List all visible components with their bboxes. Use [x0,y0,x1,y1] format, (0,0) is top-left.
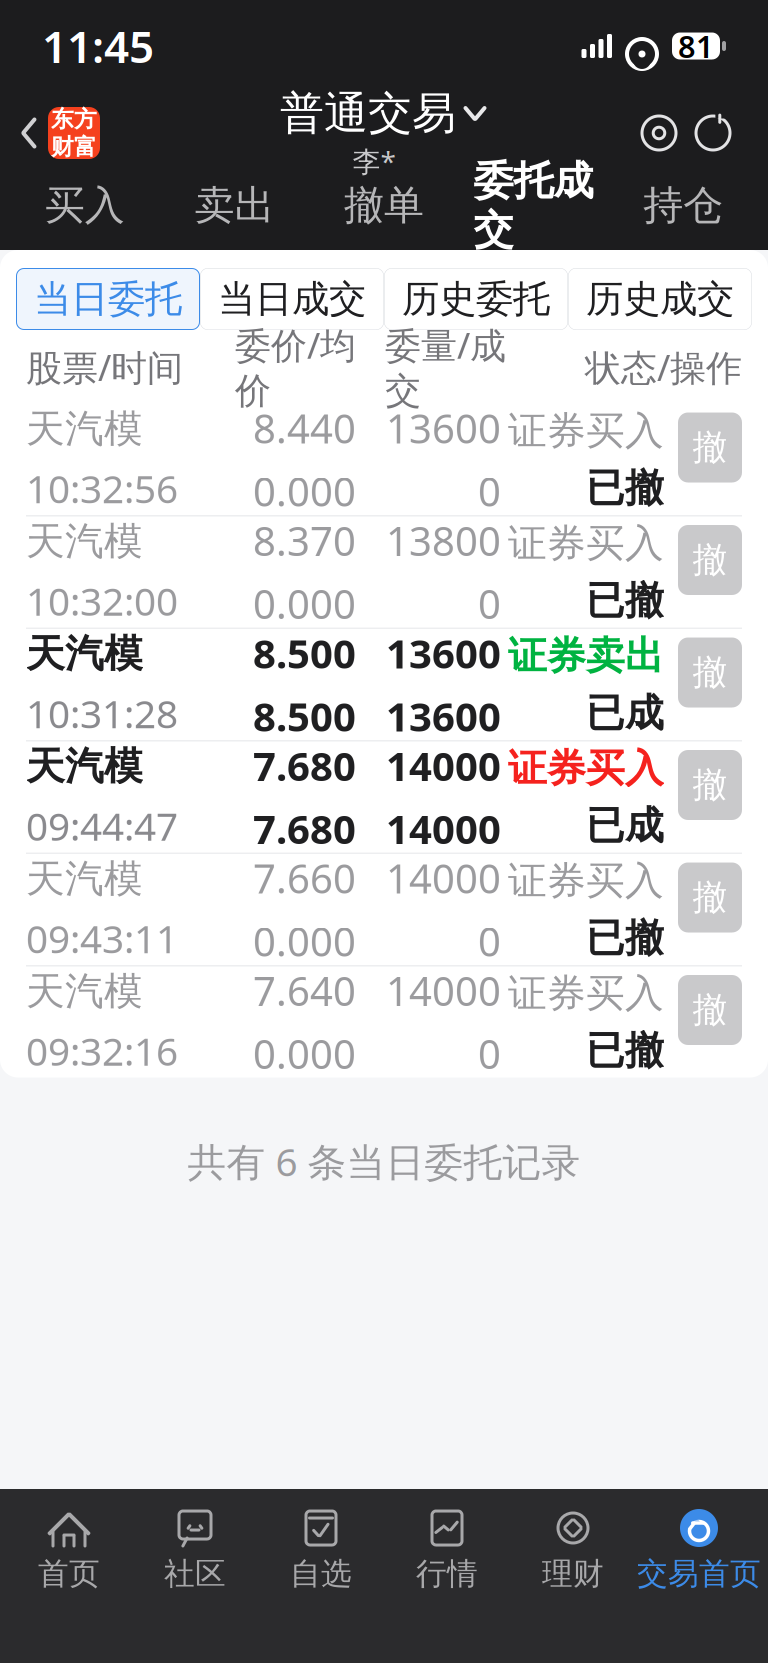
button[interactable]: 撤 [678,525,742,595]
staticText: 历史成交 [586,276,734,322]
staticText: 财富 [51,133,97,161]
staticText: 0.000 [253,577,356,630]
staticText: 天汽模 [26,518,143,565]
button[interactable]: Settings [632,106,686,160]
staticText: 社区 [164,1555,226,1593]
button[interactable]: 历史成交 [568,268,752,330]
staticText: 13800 [386,514,501,567]
button[interactable]: 普通交易 [280,86,488,180]
button[interactable]: 买入 [10,175,160,249]
staticText: 撤 [692,539,727,581]
staticText: 普通交易 [280,86,456,140]
staticText: 撤 [692,651,727,694]
staticText: 撤 [692,764,727,806]
staticText: 李* [352,142,395,180]
button[interactable]: 撤单 [309,175,459,249]
staticText: 买入 [45,181,125,230]
staticText: 13600 [386,689,501,743]
staticText: 14000 [386,851,501,904]
staticText: 09:43:11 [26,913,178,964]
staticText: 当日委托 [34,276,182,322]
staticText: 0 [478,464,501,518]
staticText: 7.660 [253,851,356,904]
staticText: 行情 [416,1555,478,1593]
staticText: 当日成交 [218,276,366,322]
button[interactable]: 撤 [678,412,742,482]
staticText: 已撤 [586,577,664,624]
button[interactable]: 持仓 [608,175,758,249]
button[interactable]: 卖出 [160,175,309,249]
staticText: 证券卖出 [508,632,664,679]
staticText: 10:31:28 [26,688,178,739]
staticText: 东方 [51,105,97,133]
button[interactable]: 当日委托 [16,268,200,330]
staticText: 自选 [290,1555,352,1593]
button[interactable]: Refresh [686,106,740,160]
staticText: 09:32:16 [26,1025,178,1076]
staticText: 8.500 [253,626,356,679]
staticText: 天汽模 [26,855,143,903]
staticText: 11:45 [42,17,154,75]
staticText: 已撤 [586,914,664,962]
staticText: 7.680 [253,739,356,792]
staticText: 持仓 [643,181,723,230]
button[interactable]: Back [0,107,100,159]
staticText: 委托成交 [474,156,594,255]
staticText: 撤 [692,876,727,919]
staticText: 10:32:56 [26,463,178,514]
staticText: 7.640 [253,964,356,1017]
staticText: 撤 [692,989,727,1031]
staticText: 8.500 [253,689,356,743]
staticText: 撤单 [344,181,424,230]
staticText: 证券买入 [508,857,664,904]
staticText: 天汽模 [26,630,143,678]
staticText: 共有 6 条当日委托记录 [187,1135,580,1187]
staticText: 撤 [692,426,727,469]
button[interactable]: 撤 [678,862,742,932]
staticText: 已撤 [586,1027,664,1074]
staticText: 0 [478,914,501,968]
staticText: 股票/时间 [26,343,183,391]
staticText: 14000 [386,802,501,855]
staticText: 81 [678,26,714,66]
staticText: 8.370 [253,514,356,567]
button[interactable]: 历史委托 [384,268,568,330]
staticText: 0.000 [253,464,356,518]
button[interactable]: 当日成交 [200,268,384,330]
staticText: 委量/成交 [385,321,506,413]
staticText: 09:44:47 [26,800,178,851]
staticText: 首页 [38,1555,100,1593]
staticText: 证券买入 [508,519,664,567]
staticText: 14000 [386,739,501,792]
staticText: 证券买入 [508,744,664,792]
staticText: 证券买入 [508,969,664,1017]
button[interactable]: 首页 [6,1505,132,1593]
staticText: 委价/均价 [235,321,356,413]
button[interactable]: 交易首页 [636,1505,762,1593]
staticText: 理财 [542,1555,604,1593]
button[interactable]: 社区 [132,1505,258,1593]
button[interactable]: 理财 [510,1505,636,1593]
staticText: 历史委托 [402,276,550,322]
staticText: 已成 [586,802,664,849]
staticText: 0.000 [253,914,356,968]
staticText: 0.000 [253,1027,356,1080]
staticText: 天汽模 [26,968,143,1015]
staticText: 已撤 [586,464,664,512]
button[interactable]: 委托成交 [459,150,608,274]
staticText: 已成 [586,689,664,737]
staticText: 13600 [386,401,501,454]
button[interactable]: 行情 [384,1505,510,1593]
button[interactable]: 撤 [678,975,742,1045]
staticText: 13600 [386,626,501,679]
staticText: 0 [478,577,501,630]
button[interactable]: 自选 [258,1505,384,1593]
button[interactable]: 撤 [678,637,742,707]
staticText: 10:32:00 [26,575,178,626]
staticText: 8.440 [253,401,356,454]
staticText: 交易首页 [637,1555,761,1593]
staticText: 卖出 [194,181,274,230]
staticText: 天汽模 [26,405,143,453]
staticText: 7.680 [253,802,356,855]
button[interactable]: 撤 [678,750,742,820]
